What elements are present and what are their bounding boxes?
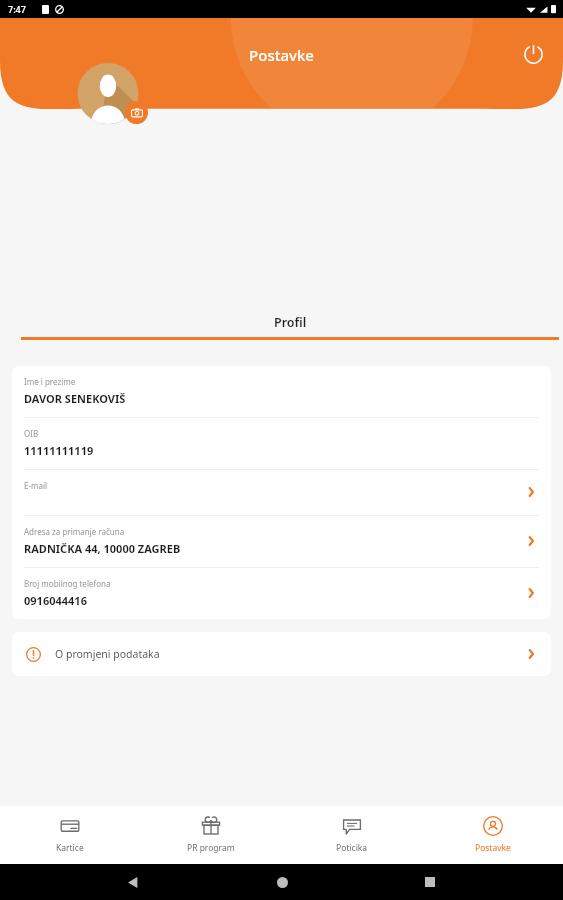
button[interactable]: Broj mobilnog telefona: [12, 568, 551, 619]
button[interactable]: O promjeni podataka: [12, 632, 551, 676]
staticText: DAVOR SENEKOVIŠ: [24, 391, 126, 406]
staticText: Postavke: [249, 45, 314, 65]
button[interactable]: Postavke: [422, 806, 563, 864]
staticText: Kartice: [56, 842, 84, 854]
button[interactable]: Recents: [415, 867, 445, 897]
staticText: Broj mobilnog telefona: [24, 578, 111, 589]
button[interactable]: Adresa za primanje računa: [12, 516, 551, 567]
staticText: 11111111119: [24, 443, 94, 458]
staticText: E-mail: [24, 480, 48, 491]
button[interactable]: PR program: [140, 806, 281, 864]
button[interactable]: Home: [267, 867, 297, 897]
staticText: 0916044416: [24, 593, 87, 608]
staticText: RADNIČKA 44, 10000 ZAGREB: [24, 541, 181, 556]
button[interactable]: Poticika: [281, 806, 422, 864]
staticText: Profil: [274, 314, 307, 331]
staticText: OIB: [24, 428, 39, 439]
staticText: PR program: [187, 842, 235, 854]
staticText: 7:47: [8, 3, 26, 15]
button[interactable]: Profil: [17, 314, 563, 340]
staticText: O promjeni podataka: [55, 647, 526, 661]
button[interactable]: Back: [118, 867, 148, 897]
staticText: Poticika: [336, 842, 368, 854]
button[interactable]: Promijeni profilnu sliku: [69, 63, 147, 124]
button[interactable]: E-mail: [12, 470, 551, 515]
button[interactable]: Kartice: [0, 806, 140, 864]
staticText: Ime i prezime: [24, 376, 76, 387]
staticText: Adresa za primanje računa: [24, 526, 125, 537]
button[interactable]: Odjava: [516, 37, 550, 71]
staticText: Postavke: [475, 842, 511, 854]
